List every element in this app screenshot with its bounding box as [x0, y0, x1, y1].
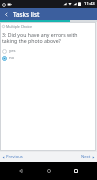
button[interactable]: Next — [79, 152, 97, 162]
staticText: no — [9, 55, 15, 61]
button[interactable]: Previous — [0, 152, 25, 162]
button[interactable]: Back — [14, 164, 28, 178]
staticText: 3: Did you have any errors with taking t… — [2, 31, 94, 45]
button[interactable]: Home — [42, 164, 56, 178]
staticText: Multiple Choice — [6, 24, 33, 29]
staticText: Tasks list — [13, 10, 40, 18]
staticText: 11:43 — [84, 1, 95, 7]
staticText: Previous — [6, 154, 23, 160]
button[interactable]: yes — [2, 48, 94, 54]
button[interactable]: no — [2, 55, 94, 61]
staticText: yes — [9, 48, 16, 54]
staticText: Next — [81, 154, 91, 160]
button[interactable]: Back — [2, 10, 11, 19]
button[interactable]: Recent apps — [69, 164, 83, 178]
